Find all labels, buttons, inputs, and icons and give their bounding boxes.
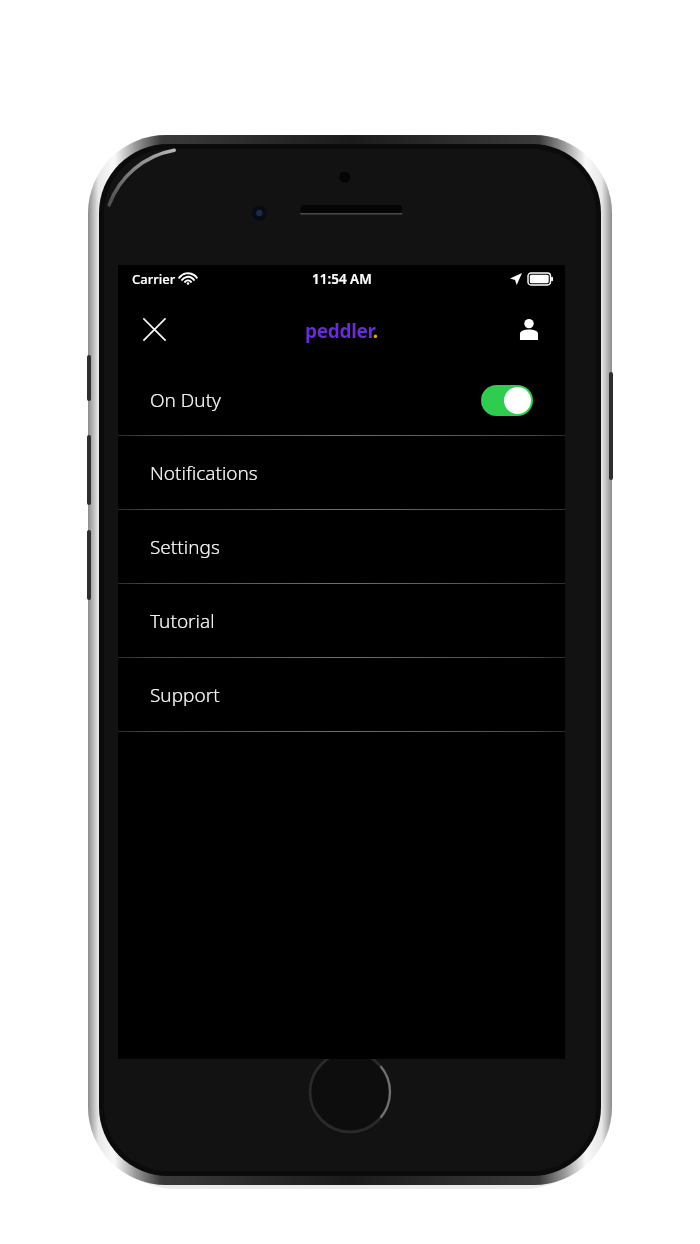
staticText: Settings	[150, 534, 220, 560]
staticText: 11:54 AM	[312, 270, 372, 288]
button[interactable]: On Duty	[118, 365, 565, 435]
staticText: Carrier	[132, 270, 176, 288]
staticText: Tutorial	[150, 608, 215, 634]
button[interactable]: peddler.	[305, 318, 378, 344]
button[interactable]: Close	[134, 309, 174, 349]
staticText: Notifications	[150, 460, 258, 486]
staticText: Support	[150, 682, 220, 708]
button[interactable]: Tutorial	[118, 584, 565, 657]
button[interactable]: Notifications	[118, 436, 565, 509]
staticText: On Duty	[150, 387, 222, 413]
staticText: peddler.	[305, 318, 378, 344]
other: On Duty toggle	[481, 385, 533, 416]
button[interactable]: Settings	[118, 510, 565, 583]
button[interactable]: Support	[118, 658, 565, 731]
button[interactable]: Profile	[509, 309, 549, 349]
